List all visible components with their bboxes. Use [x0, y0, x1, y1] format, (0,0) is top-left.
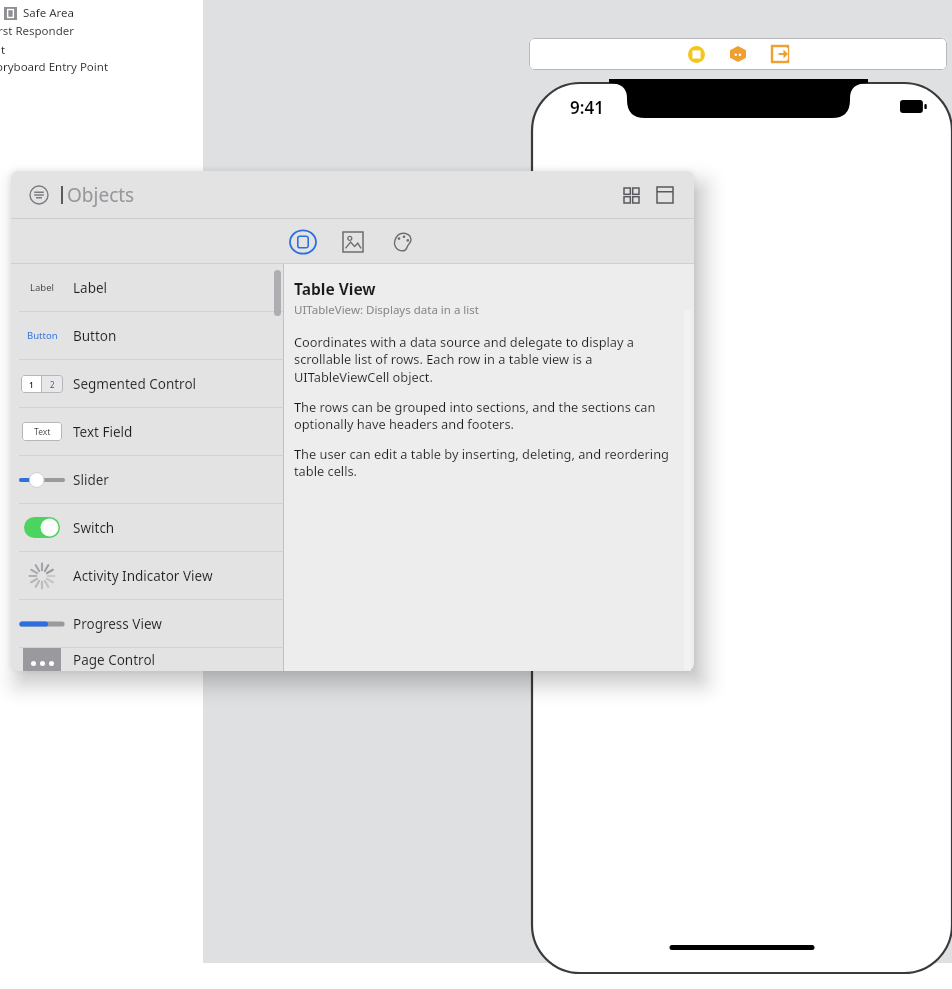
staticText: Button: [73, 327, 117, 345]
staticText: Button: [27, 329, 58, 342]
staticText: Page Control: [73, 651, 156, 669]
button[interactable]: List view: [652, 182, 678, 208]
staticText: 2: [50, 379, 55, 390]
button[interactable]: 1: [11, 360, 283, 407]
staticText: Activity Indicator View: [73, 567, 213, 585]
button[interactable]: Exit: [769, 43, 791, 65]
button[interactable]: Switch: [11, 504, 283, 551]
staticText: rst Responder: [0, 23, 74, 39]
button[interactable]: Color library: [388, 227, 418, 257]
button[interactable]: Grid view: [618, 182, 644, 208]
staticText: it: [0, 42, 6, 58]
staticText: Safe Area: [23, 5, 75, 21]
staticText: Table View: [294, 278, 376, 299]
staticText: Slider: [73, 471, 109, 489]
staticText: Text Field: [73, 423, 133, 441]
staticText: Text: [34, 426, 51, 438]
staticText: 1: [29, 379, 34, 390]
staticText: Segmented Control: [73, 375, 197, 393]
button[interactable]: Progress View: [11, 600, 283, 647]
button[interactable]: Page Control: [11, 648, 283, 671]
staticText: Objects: [67, 182, 135, 208]
staticText: oryboard Entry Point: [0, 59, 109, 75]
staticText: Label: [30, 281, 54, 294]
staticText: Switch: [73, 519, 115, 537]
button[interactable]: View Controller: [685, 43, 707, 65]
button[interactable]: Safe Area: [0, 3, 75, 23]
staticText: UITableView: Displays data in a list: [294, 302, 479, 318]
button[interactable]: Label: [11, 264, 283, 311]
button[interactable]: Filter: [27, 183, 51, 207]
staticText: Label: [73, 279, 108, 297]
button[interactable]: Media library: [338, 227, 368, 257]
button[interactable]: Text: [11, 408, 283, 455]
button[interactable]: Slider: [11, 456, 283, 503]
button[interactable]: Objects library: [288, 227, 318, 257]
button[interactable]: First Responder: [727, 43, 749, 65]
staticText: The user can edit a table by inserting, …: [294, 445, 672, 479]
button[interactable]: Button: [11, 312, 283, 359]
button[interactable]: Activity Indicator View: [11, 552, 283, 599]
staticText: Coordinates with a data source and deleg…: [294, 333, 672, 385]
staticText: The rows can be grouped into sections, a…: [294, 398, 672, 432]
staticText: 9:41: [570, 96, 604, 119]
staticText: Progress View: [73, 615, 162, 633]
